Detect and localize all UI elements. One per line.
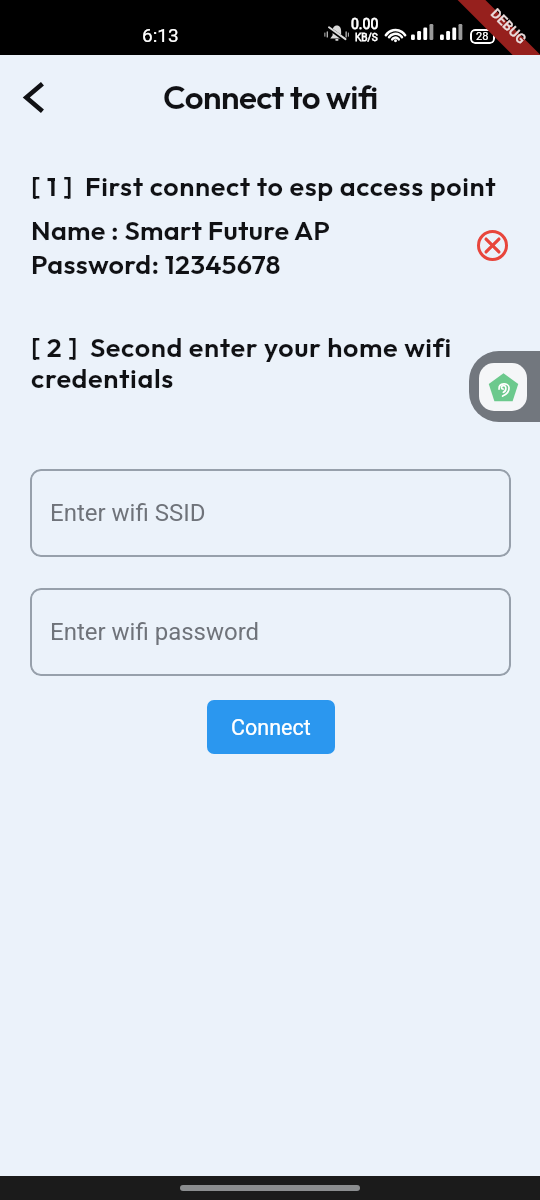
button[interactable]: Back [7,71,59,123]
staticText: Password: 12345678 [31,247,281,281]
button[interactable]: Enter wifi password [30,588,511,676]
staticText: [ 2 ] Second enter your home wifi creden… [31,330,463,395]
staticText: DEBUG [488,6,530,47]
staticText: Enter wifi password [50,618,260,646]
staticText: [ 1 ] First connect to esp access point [31,169,497,203]
button[interactable]: Close [473,226,512,265]
staticText: KB/S [355,32,378,44]
button[interactable]: Connect [207,700,335,754]
staticText: Enter wifi SSID [50,499,206,527]
staticText: Name : Smart Future AP [31,213,331,247]
button[interactable]: Accessibility menu [469,351,540,422]
staticText: Connect [231,715,311,740]
staticText: Connect to wifi [163,76,378,118]
button[interactable]: Enter wifi SSID [30,469,511,557]
staticText: 0.00 [351,16,379,32]
staticText: 28 [476,30,489,43]
staticText: 6:13 [142,24,179,46]
